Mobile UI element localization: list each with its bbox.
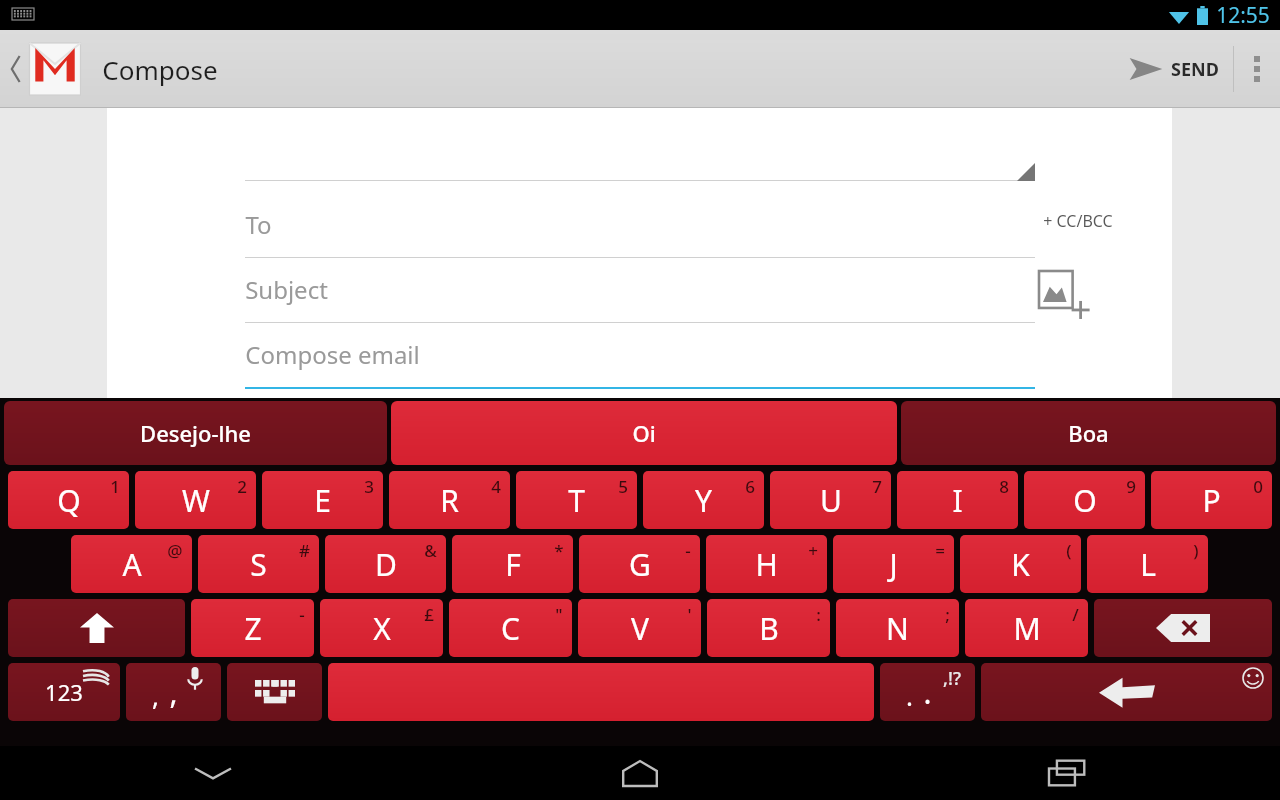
- button[interactable]: B: [707, 599, 830, 657]
- staticText: ,: [169, 672, 178, 713]
- button[interactable]: Backspace: [1094, 599, 1272, 657]
- staticText: 5: [618, 475, 628, 498]
- button[interactable]: Oi: [391, 401, 897, 465]
- staticText: D: [375, 544, 397, 585]
- staticText: 9: [1126, 475, 1136, 498]
- button[interactable]: O: [1024, 471, 1145, 529]
- button[interactable]: Switch keyboard: [227, 663, 322, 721]
- staticText: L: [1140, 544, 1156, 585]
- staticText: @: [167, 539, 183, 562]
- staticText: .: [923, 672, 932, 713]
- button[interactable]: M: [965, 599, 1088, 657]
- staticText: C: [501, 608, 520, 649]
- button[interactable]: N: [836, 599, 959, 657]
- button[interactable]: W: [135, 471, 256, 529]
- staticText: :: [816, 603, 821, 626]
- button[interactable]: Compose email: [245, 338, 1035, 389]
- staticText: Compose email: [245, 338, 420, 371]
- button[interactable]: A: [71, 535, 192, 593]
- staticText: S: [250, 544, 267, 585]
- staticText: #: [299, 539, 310, 562]
- button[interactable]: P: [1151, 471, 1272, 529]
- button[interactable]: Y: [643, 471, 764, 529]
- staticText: I: [952, 480, 963, 521]
- button[interactable]: 123: [8, 663, 120, 721]
- staticText: T: [568, 480, 585, 521]
- staticText: F: [505, 544, 521, 585]
- staticText: Oi: [632, 418, 656, 448]
- staticText: ,: [152, 678, 159, 713]
- staticText: 4: [491, 475, 501, 498]
- button[interactable]: Shift: [8, 599, 185, 657]
- button[interactable]: More options: [1234, 30, 1280, 108]
- staticText: +: [808, 539, 818, 562]
- button[interactable]: I: [897, 471, 1018, 529]
- staticText: R: [440, 480, 459, 521]
- staticText: ": [555, 603, 563, 626]
- button[interactable]: V: [578, 599, 701, 657]
- button[interactable]: F: [452, 535, 573, 593]
- staticText: J: [889, 544, 898, 585]
- button[interactable]: SEND: [1115, 30, 1233, 108]
- staticText: -: [299, 603, 305, 626]
- button[interactable]: Z: [191, 599, 314, 657]
- button[interactable]: Home: [426, 746, 853, 800]
- button[interactable]: U: [770, 471, 891, 529]
- staticText: Desejo-lhe: [140, 418, 251, 448]
- staticText: 2: [237, 475, 247, 498]
- staticText: 12:55: [1216, 1, 1270, 30]
- button[interactable]: .: [880, 663, 975, 721]
- button[interactable]: R: [389, 471, 510, 529]
- staticText: H: [755, 544, 778, 585]
- staticText: ': [687, 603, 692, 626]
- button[interactable]: Attach image: [1037, 269, 1093, 325]
- staticText: £: [424, 603, 434, 626]
- button[interactable]: L: [1087, 535, 1208, 593]
- button[interactable]: Q: [8, 471, 129, 529]
- button[interactable]: To: [245, 208, 1035, 258]
- staticText: A: [122, 544, 142, 585]
- button[interactable]: H: [706, 535, 827, 593]
- button[interactable]: J: [833, 535, 954, 593]
- button[interactable]: Navigate up: [6, 30, 88, 108]
- staticText: X: [373, 608, 391, 649]
- button[interactable]: G: [579, 535, 700, 593]
- staticText: To: [245, 208, 272, 241]
- staticText: Boa: [1068, 418, 1109, 448]
- staticText: Subject: [245, 273, 328, 306]
- button[interactable]: Enter: [981, 663, 1272, 721]
- staticText: 123: [45, 677, 83, 707]
- staticText: E: [314, 480, 331, 521]
- button[interactable]: Subject: [245, 273, 1035, 323]
- staticText: P: [1202, 480, 1221, 521]
- staticText: G: [629, 544, 651, 585]
- staticText: =: [935, 539, 945, 562]
- button[interactable]: Hide keyboard: [0, 746, 426, 800]
- staticText: B: [759, 608, 779, 649]
- staticText: K: [1011, 544, 1030, 585]
- button[interactable]: ,: [126, 663, 221, 721]
- button[interactable]: Boa: [901, 401, 1276, 465]
- staticText: Z: [244, 608, 262, 649]
- staticText: (: [1066, 539, 1072, 562]
- staticText: /: [1072, 603, 1079, 626]
- button[interactable]: S: [198, 535, 319, 593]
- staticText: ): [1193, 539, 1199, 562]
- button[interactable]: E: [262, 471, 383, 529]
- staticText: N: [886, 608, 909, 649]
- staticText: 3: [364, 475, 374, 498]
- staticText: 0: [1253, 475, 1263, 498]
- staticText: 7: [872, 475, 882, 498]
- button[interactable]: Recent apps: [853, 746, 1280, 800]
- button[interactable]: D: [325, 535, 446, 593]
- button[interactable]: X: [320, 599, 443, 657]
- button[interactable]: Desejo-lhe: [4, 401, 387, 465]
- button[interactable]: K: [960, 535, 1081, 593]
- staticText: V: [631, 608, 649, 649]
- button[interactable]: C: [449, 599, 572, 657]
- staticText: O: [1073, 480, 1097, 521]
- button[interactable]: Space: [328, 663, 874, 721]
- button[interactable]: T: [516, 471, 637, 529]
- staticText: ;: [945, 603, 950, 626]
- button[interactable]: + CC/BCC: [1037, 204, 1119, 238]
